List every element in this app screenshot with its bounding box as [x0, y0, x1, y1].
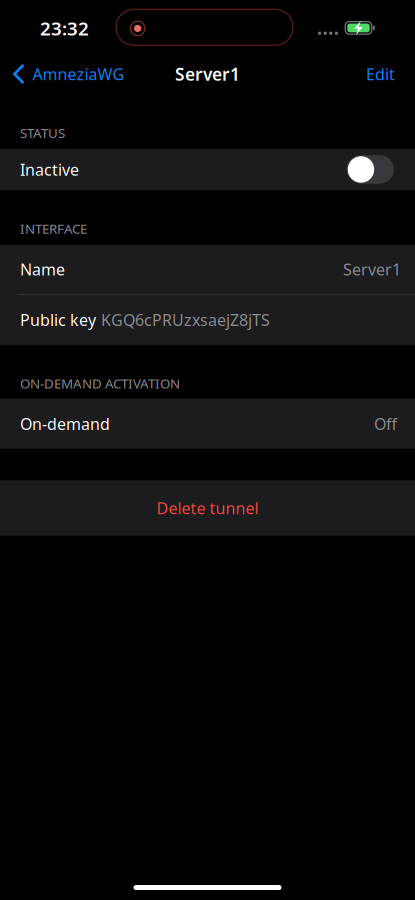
- staticText: Edit: [366, 63, 395, 85]
- staticText: On-demand: [20, 413, 110, 434]
- staticText: Public key: [20, 309, 96, 330]
- staticText: STATUS: [20, 124, 65, 142]
- staticText: Inactive: [20, 159, 79, 180]
- staticText: Server1: [175, 62, 240, 85]
- staticText: AmneziaWG: [32, 63, 124, 85]
- button[interactable]: Inactive: [0, 149, 415, 190]
- staticText: Off: [374, 413, 397, 434]
- staticText: INTERFACE: [20, 220, 87, 237]
- staticText: Delete tunnel: [156, 497, 258, 518]
- staticText: Server1: [343, 259, 401, 280]
- button[interactable]: Edit: [350, 55, 415, 93]
- staticText: KGQ6cPRUzxsaejZ8jTS: [101, 309, 270, 330]
- staticText: ON-DEMAND ACTIVATION: [20, 374, 180, 392]
- staticText: Name: [20, 259, 65, 280]
- staticText: 23:32: [40, 16, 89, 41]
- button[interactable]: On-demand: [0, 399, 415, 449]
- button[interactable]: AmneziaWG: [0, 55, 134, 93]
- button[interactable]: Delete tunnel: [0, 480, 415, 536]
